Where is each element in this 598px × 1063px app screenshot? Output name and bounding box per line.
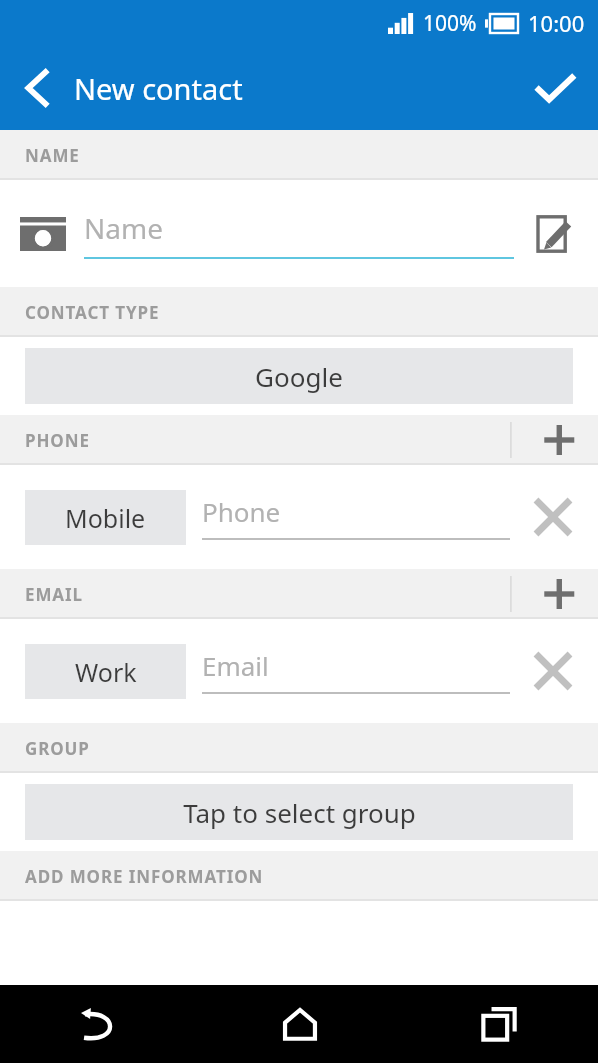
button[interactable]: Mobile [25, 490, 186, 545]
button[interactable]: Remove Work field [524, 642, 582, 700]
staticText: CONTACT TYPE [25, 301, 160, 324]
staticText: Tap to select group [183, 795, 416, 830]
button[interactable]: Add email address [510, 569, 598, 619]
staticText: ADD MORE INFORMATION [25, 865, 264, 888]
staticText: PHONE [25, 429, 90, 452]
button[interactable]: Google [25, 348, 573, 404]
staticText: Work [75, 655, 137, 689]
button[interactable]: Home [200, 985, 399, 1063]
button[interactable]: Remove Mobile field [524, 488, 582, 546]
button[interactable]: Tap to select group [25, 784, 573, 840]
staticText: NAME [25, 144, 80, 167]
button[interactable]: Recent apps [399, 985, 598, 1063]
staticText: Mobile [65, 501, 146, 535]
staticText: 10:00 [528, 8, 585, 38]
staticText: 100% [423, 9, 477, 38]
staticText: Email [202, 648, 269, 683]
button[interactable]: Save contact [512, 46, 598, 130]
button[interactable]: Navigate back [0, 46, 74, 130]
button[interactable]: Work [25, 644, 186, 699]
button[interactable]: Add contact photo [14, 205, 72, 263]
button[interactable]: Add phone number [510, 415, 598, 465]
staticText: Phone [202, 494, 281, 529]
button[interactable]: Edit name details [526, 206, 582, 262]
staticText: Google [255, 359, 343, 394]
staticText: New contact [74, 69, 243, 108]
staticText: GROUP [25, 737, 90, 760]
staticText: EMAIL [25, 583, 83, 606]
staticText: Name [84, 209, 163, 247]
button[interactable]: Back [0, 985, 200, 1063]
